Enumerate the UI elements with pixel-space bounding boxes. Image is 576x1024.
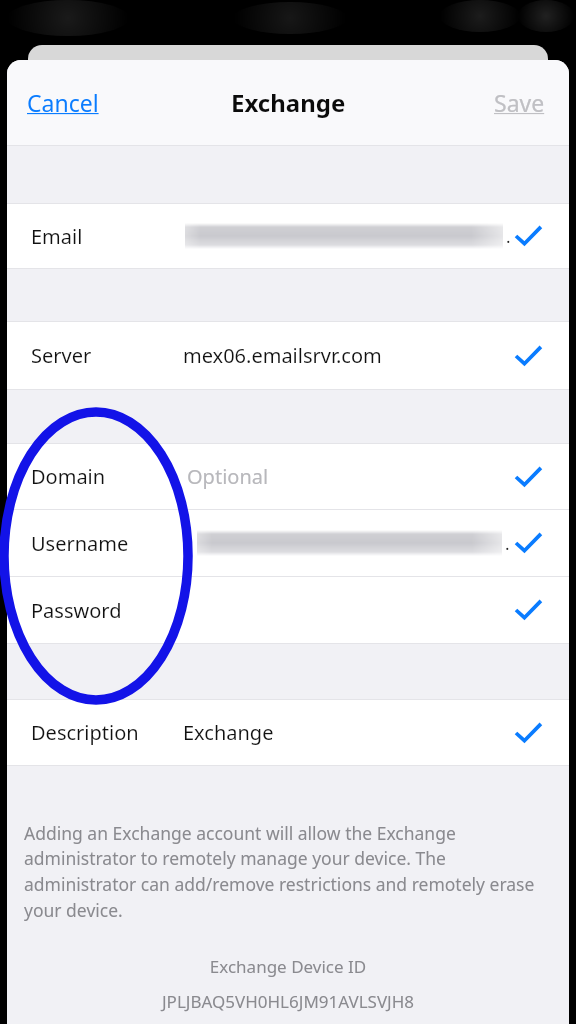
staticText: Domain (31, 463, 106, 490)
staticText: Password (31, 597, 122, 624)
button[interactable]: Domain (7, 444, 569, 509)
staticText: Save (494, 87, 545, 118)
staticText: . (505, 532, 510, 555)
staticText: JPLJBAQ5VH0HL6JM91AVLSVJH8 (7, 990, 569, 1013)
button[interactable]: Username (7, 510, 569, 576)
staticText: Exchange (183, 719, 274, 746)
staticText: Exchange Device ID (7, 955, 569, 978)
staticText: Email (31, 223, 83, 250)
staticText: mex06.emailsrvr.com (183, 342, 382, 369)
button[interactable]: Cancel (23, 81, 103, 124)
staticText: Adding an Exchange account will allow th… (24, 821, 551, 923)
staticText: . (506, 225, 511, 248)
staticText: Username (31, 530, 129, 557)
staticText: Exchange (231, 86, 346, 119)
staticText: Description (31, 719, 139, 746)
button[interactable]: Save (490, 81, 549, 124)
staticText: Server (31, 342, 92, 369)
button[interactable]: Password (7, 577, 569, 643)
button[interactable]: Description (7, 700, 569, 765)
staticText: Cancel (27, 87, 99, 118)
staticText: Optional (187, 463, 269, 490)
button[interactable]: Email (7, 204, 569, 268)
button[interactable]: Server (7, 322, 569, 389)
